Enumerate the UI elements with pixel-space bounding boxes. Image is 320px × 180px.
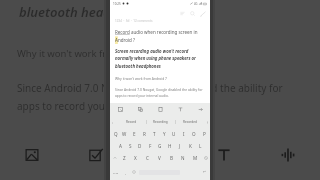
button[interactable]: Sort xyxy=(178,9,187,18)
staticText: P xyxy=(203,131,206,137)
staticText: X xyxy=(134,155,137,161)
staticText: N xyxy=(181,155,185,161)
staticText: H xyxy=(168,143,172,149)
button[interactable]: Enter xyxy=(198,164,210,180)
staticText: , xyxy=(125,170,126,175)
button[interactable]: J xyxy=(175,140,185,152)
staticText: ↵ xyxy=(203,170,206,174)
staticText: Recording xyxy=(153,120,168,124)
staticText: C xyxy=(146,155,149,161)
button[interactable]: V xyxy=(153,152,165,164)
staticText: V xyxy=(158,155,161,161)
button[interactable]: Z xyxy=(119,152,130,164)
button[interactable]: M xyxy=(189,152,201,164)
button[interactable]: I xyxy=(179,128,189,140)
button[interactable]: D xyxy=(135,140,145,152)
staticText: G xyxy=(158,143,162,149)
button[interactable]: Record audio xyxy=(256,143,320,167)
staticText: I xyxy=(183,131,185,137)
staticText: R xyxy=(143,131,146,137)
button[interactable]: L xyxy=(195,140,205,152)
staticText: K xyxy=(189,143,192,149)
staticText: apps to record your internal audio. xyxy=(17,99,181,113)
button[interactable]: Q xyxy=(111,128,120,140)
button[interactable]: P xyxy=(199,128,209,140)
button[interactable]: H xyxy=(165,140,175,152)
staticText: 4G xyxy=(194,2,198,6)
staticText: Q xyxy=(114,131,118,137)
staticText: U xyxy=(172,131,176,137)
staticText: Z xyxy=(123,155,126,161)
button[interactable]: Translate xyxy=(130,103,150,116)
button[interactable]: Previous xyxy=(110,116,116,128)
staticText: A xyxy=(119,143,122,149)
staticText: M xyxy=(193,155,198,161)
staticText: B xyxy=(170,155,173,161)
staticText: bluetooth headphones xyxy=(19,3,155,21)
button[interactable]: R xyxy=(139,128,149,140)
staticText: Screen recording audio won't record norm… xyxy=(115,48,204,70)
staticText: Y xyxy=(163,131,166,137)
button[interactable]: Backspace xyxy=(201,152,210,164)
staticText: 10:25 xyxy=(113,2,121,6)
staticText: D xyxy=(138,143,142,149)
button[interactable]: Settings xyxy=(190,103,210,116)
button[interactable]: Y xyxy=(159,128,169,140)
button[interactable]: Emoji xyxy=(128,164,139,180)
button[interactable]: Checklist xyxy=(64,143,128,167)
staticText: F xyxy=(149,143,152,149)
button[interactable]: Format text xyxy=(192,143,256,167)
staticText: Why it won't work from Android 7 xyxy=(17,47,167,60)
button[interactable]: X xyxy=(130,152,141,164)
staticText: 1234 · 5d · 12 comments xyxy=(115,19,153,23)
button[interactable]: Recording xyxy=(146,116,175,128)
button[interactable]: , xyxy=(122,164,128,180)
button[interactable]: T xyxy=(149,128,159,140)
button[interactable]: Expand suggestions xyxy=(204,116,210,128)
button[interactable]: S xyxy=(125,140,135,152)
staticText: L xyxy=(199,143,202,149)
staticText: ?123 xyxy=(113,171,119,174)
staticText: Recorded xyxy=(183,120,197,124)
button[interactable]: Record xyxy=(116,116,146,128)
button[interactable]: Clipboard xyxy=(110,103,130,116)
staticText: Record xyxy=(126,120,137,124)
button[interactable]: A xyxy=(115,140,125,152)
staticText: Since Android 7.0 Nougat, Google disable… xyxy=(115,87,206,98)
button[interactable]: B xyxy=(165,152,177,164)
button[interactable]: Recorded xyxy=(175,116,204,128)
button[interactable]: Edit xyxy=(198,9,207,18)
button[interactable]: Shift xyxy=(110,152,119,164)
staticText: T xyxy=(153,131,156,137)
staticText: O xyxy=(192,131,196,137)
button[interactable]: U xyxy=(169,128,179,140)
button[interactable]: Search xyxy=(188,9,197,18)
button[interactable]: Draw xyxy=(128,143,192,167)
button[interactable]: Sticker xyxy=(150,103,170,116)
staticText: Since Android 7.0 Nougat, Google disable… xyxy=(17,81,283,95)
button[interactable]: C xyxy=(141,152,153,164)
button[interactable]: E xyxy=(129,128,139,140)
staticText: W xyxy=(122,131,127,137)
staticText: Record audio when recording screen in An… xyxy=(115,29,207,44)
staticText: J xyxy=(179,143,181,149)
button[interactable]: K xyxy=(185,140,195,152)
staticText: S xyxy=(129,143,132,149)
button[interactable]: Symbols xyxy=(110,164,122,180)
button[interactable]: Text edit xyxy=(170,103,190,116)
button[interactable]: F xyxy=(145,140,155,152)
staticText: ‹ xyxy=(112,120,114,125)
staticText: E xyxy=(133,131,136,137)
staticText: Why it won't work from Android 7 xyxy=(115,76,167,80)
button[interactable]: O xyxy=(189,128,199,140)
button[interactable]: N xyxy=(177,152,189,164)
button[interactable]: W xyxy=(120,128,129,140)
button[interactable]: G xyxy=(155,140,165,152)
button[interactable]: Insert image xyxy=(0,143,64,167)
